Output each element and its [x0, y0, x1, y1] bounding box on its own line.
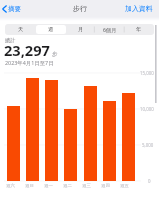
staticText: 2023年4月1日至7日	[5, 59, 54, 66]
staticText: 5,000	[142, 142, 154, 148]
staticText: 加入資料	[125, 4, 153, 13]
staticText: 週六	[6, 183, 15, 189]
staticText: 週五	[120, 183, 129, 189]
button[interactable]: 天	[6, 25, 36, 34]
button[interactable]: 加入資料	[121, 2, 159, 15]
staticText: 天	[18, 26, 24, 33]
button[interactable]: 摘要	[0, 3, 26, 15]
button[interactable]: 年	[124, 25, 153, 34]
staticText: 月	[78, 26, 84, 33]
staticText: 0	[148, 178, 151, 184]
staticText: 總計	[5, 37, 16, 44]
staticText: 10,000	[140, 106, 154, 112]
staticText: 週	[48, 26, 54, 33]
staticText: 週三	[82, 183, 91, 189]
button[interactable]: 週	[36, 25, 66, 34]
staticText: 週一	[44, 183, 53, 189]
staticText: 23,297	[4, 40, 50, 60]
staticText: 步行	[73, 4, 87, 13]
staticText: 週二	[63, 183, 72, 189]
staticText: 摘要	[8, 5, 22, 13]
staticText: 週四	[101, 183, 110, 189]
button[interactable]: 月	[66, 25, 95, 34]
staticText: 15,000	[140, 70, 154, 76]
staticText: 6個月	[103, 26, 117, 33]
staticText: 步	[52, 51, 58, 58]
staticText: 年	[136, 26, 142, 33]
staticText: 週日	[25, 183, 34, 189]
button[interactable]: 6個月	[95, 25, 124, 34]
